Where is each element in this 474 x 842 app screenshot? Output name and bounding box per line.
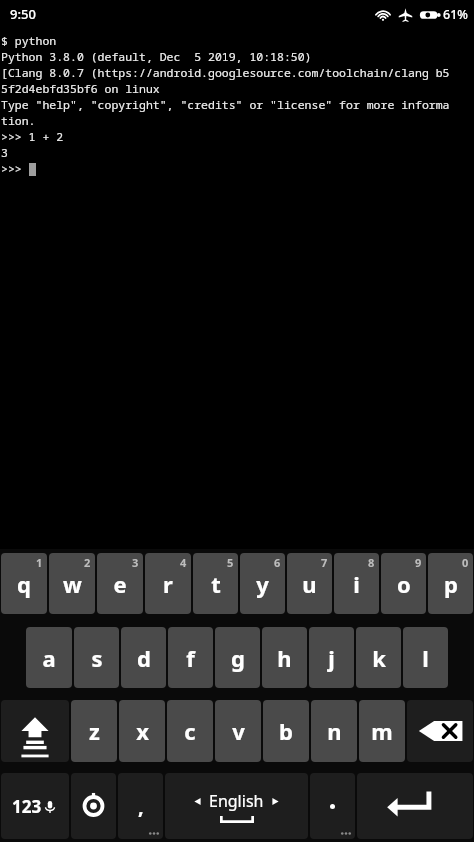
- button[interactable]: u: [287, 553, 332, 614]
- staticText: b: [279, 716, 293, 746]
- staticText: $ python: [1, 33, 57, 49]
- staticText: 3: [1, 145, 8, 161]
- button[interactable]: [310, 773, 355, 839]
- button[interactable]: 123: [1, 773, 69, 839]
- staticText: d: [137, 643, 151, 673]
- staticText: a: [42, 643, 56, 673]
- button[interactable]: z: [71, 700, 117, 762]
- button[interactable]: n: [311, 700, 357, 762]
- staticText: Python 3.8.0 (default, Dec 5 2019, 10:18…: [1, 49, 312, 65]
- staticText: u: [302, 569, 317, 599]
- staticText: Type "help", "copyright", "credits" or "…: [1, 97, 450, 113]
- button[interactable]: l: [403, 627, 448, 688]
- staticText: k: [372, 643, 386, 673]
- button[interactable]: d: [121, 627, 166, 688]
- staticText: 61%: [443, 6, 468, 23]
- button[interactable]: b: [263, 700, 309, 762]
- staticText: 7: [321, 555, 328, 570]
- staticText: z: [89, 716, 100, 746]
- button[interactable]: Enter: [357, 773, 473, 839]
- staticText: q: [17, 569, 31, 599]
- button[interactable]: x: [119, 700, 165, 762]
- button[interactable]: o: [381, 553, 426, 614]
- button[interactable]: h: [262, 627, 307, 688]
- button[interactable]: ,: [118, 773, 163, 839]
- staticText: n: [327, 716, 342, 746]
- staticText: i: [353, 569, 360, 599]
- button[interactable]: English: [165, 773, 308, 839]
- button[interactable]: v: [215, 700, 261, 762]
- staticText: 5f2d4ebfd35bf6 on linux: [1, 81, 160, 97]
- staticText: 9:50: [10, 5, 36, 23]
- staticText: tion.: [1, 113, 36, 129]
- button[interactable]: w: [49, 553, 95, 614]
- staticText: English: [209, 790, 264, 812]
- staticText: ,: [138, 793, 144, 820]
- button[interactable]: t: [193, 553, 238, 614]
- staticText: o: [397, 569, 411, 599]
- button[interactable]: p: [428, 553, 473, 614]
- staticText: >>> 1 + 2: [1, 129, 64, 145]
- staticText: [Clang 8.0.7 (https://android.googlesour…: [1, 65, 450, 81]
- staticText: v: [232, 716, 245, 746]
- staticText: x: [136, 716, 149, 746]
- staticText: >>>: [1, 161, 29, 177]
- staticText: 6: [274, 555, 281, 570]
- staticText: m: [371, 716, 393, 746]
- button[interactable]: i: [334, 553, 379, 614]
- staticText: j: [328, 643, 335, 673]
- staticText: t: [211, 569, 221, 599]
- button[interactable]: f: [168, 627, 213, 688]
- staticText: c: [184, 716, 196, 746]
- staticText: 4: [180, 555, 187, 570]
- button[interactable]: m: [359, 700, 405, 762]
- button[interactable]: r: [145, 553, 191, 614]
- button[interactable]: Shift: [1, 700, 69, 762]
- staticText: l: [422, 643, 429, 673]
- button[interactable]: e: [97, 553, 143, 614]
- staticText: s: [91, 643, 103, 673]
- button[interactable]: Settings: [71, 773, 116, 839]
- button[interactable]: g: [215, 627, 260, 688]
- staticText: 123: [12, 795, 42, 818]
- staticText: y: [256, 569, 269, 599]
- staticText: 2: [84, 555, 91, 570]
- staticText: 9: [415, 555, 422, 570]
- button[interactable]: c: [167, 700, 213, 762]
- staticText: e: [113, 569, 127, 599]
- staticText: 0: [462, 555, 469, 570]
- button[interactable]: s: [74, 627, 119, 688]
- button[interactable]: y: [240, 553, 285, 614]
- staticText: g: [231, 643, 245, 673]
- staticText: 1: [36, 555, 43, 570]
- button[interactable]: j: [309, 627, 354, 688]
- staticText: 8: [368, 555, 375, 570]
- staticText: f: [186, 643, 195, 673]
- staticText: 3: [132, 555, 139, 570]
- staticText: h: [277, 643, 292, 673]
- staticText: 5: [227, 555, 234, 570]
- button[interactable]: a: [26, 627, 72, 688]
- button[interactable]: Backspace: [407, 700, 473, 762]
- button[interactable]: q: [1, 553, 47, 614]
- staticText: w: [63, 569, 82, 599]
- staticText: p: [444, 569, 458, 599]
- staticText: r: [163, 569, 173, 599]
- button[interactable]: k: [356, 627, 401, 688]
